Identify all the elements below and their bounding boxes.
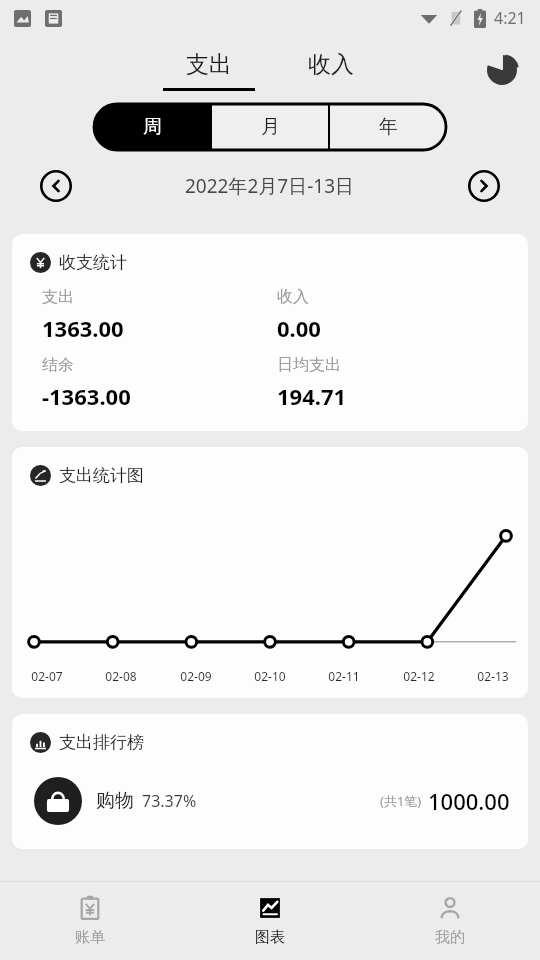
staticText: 购物	[96, 789, 134, 813]
staticText: 4:21	[494, 7, 526, 29]
staticText: 我的	[435, 928, 465, 947]
staticText: 02-08	[105, 668, 137, 684]
staticText: 02-07	[31, 668, 63, 684]
staticText: 年	[379, 115, 398, 139]
staticText: (共1笔)	[380, 792, 422, 810]
button[interactable]: 月	[212, 104, 328, 150]
button[interactable]: 收入	[279, 50, 383, 91]
button[interactable]: 年	[330, 104, 446, 150]
staticText: 02-09	[180, 668, 212, 684]
button[interactable]: Previous period	[38, 168, 74, 204]
staticText: 0.00	[277, 313, 321, 343]
button[interactable]: 图表	[180, 882, 360, 960]
staticText: 收入	[308, 50, 354, 79]
staticText: 支出	[42, 287, 74, 307]
staticText: 02-12	[403, 668, 435, 684]
staticText: 194.71	[277, 381, 347, 411]
staticText: 02-13	[477, 668, 509, 684]
staticText: 收支统计	[59, 252, 127, 273]
staticText: 月	[261, 115, 280, 139]
staticText: 02-11	[328, 668, 360, 684]
button[interactable]: Next period	[466, 168, 502, 204]
staticText: 支出	[186, 50, 232, 79]
staticText: -1363.00	[42, 381, 131, 411]
staticText: 日均支出	[277, 355, 341, 375]
staticText: 收入	[277, 287, 309, 307]
staticText: 支出排行榜	[59, 732, 144, 753]
button[interactable]: 周	[94, 104, 210, 150]
button[interactable]: 账单	[0, 882, 180, 960]
staticText: 1000.00	[428, 786, 510, 816]
staticText: 73.37%	[142, 790, 197, 812]
button[interactable]: 购物	[34, 777, 510, 825]
staticText: 2022年2月7日-13日	[185, 173, 355, 199]
button[interactable]: 支出	[157, 50, 261, 91]
staticText: 图表	[255, 928, 285, 947]
button[interactable]: Pie chart view	[480, 48, 524, 92]
staticText: 结余	[42, 355, 74, 375]
button[interactable]: 我的	[360, 882, 540, 960]
staticText: 02-10	[254, 668, 286, 684]
staticText: 支出统计图	[59, 465, 144, 486]
staticText: 1363.00	[42, 313, 124, 343]
staticText: 周	[143, 115, 162, 139]
staticText: 账单	[75, 928, 105, 947]
